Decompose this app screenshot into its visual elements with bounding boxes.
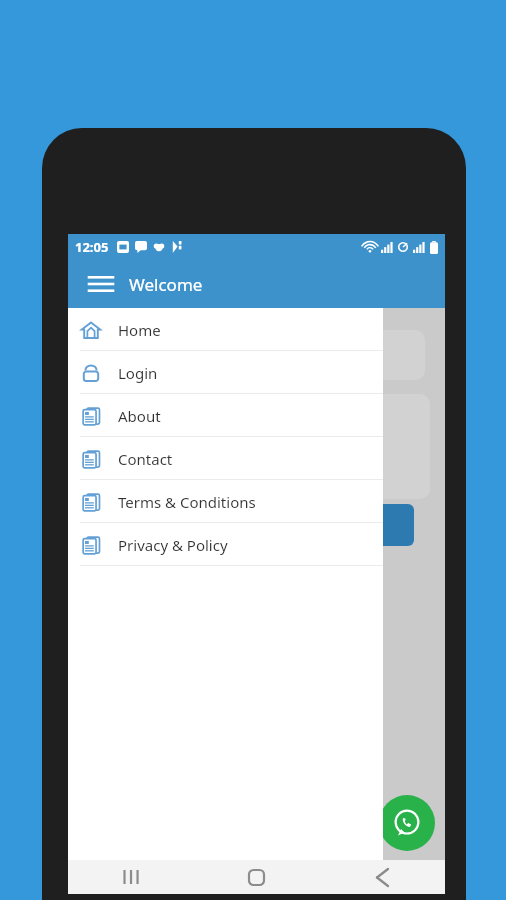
button[interactable]: Privacy & Policy [68, 523, 383, 566]
staticText: About [118, 406, 161, 426]
button[interactable]: Login [68, 351, 383, 394]
button[interactable]: Home [68, 308, 383, 351]
staticText: Contact [118, 449, 173, 469]
button[interactable]: Contact [68, 437, 383, 480]
button[interactable]: Home [193, 860, 319, 894]
staticText: 12:05 [75, 238, 109, 256]
staticText: Login [118, 363, 158, 383]
button[interactable]: Open navigation menu [79, 260, 123, 308]
button[interactable]: WhatsApp [379, 795, 435, 851]
staticText: Welcome [129, 273, 203, 296]
button[interactable]: Terms & Conditions [68, 480, 383, 523]
button[interactable]: Recent apps [68, 860, 193, 894]
staticText: Terms & Conditions [118, 492, 256, 512]
button[interactable]: About [68, 394, 383, 437]
staticText: Home [118, 320, 161, 340]
button[interactable]: Back [319, 860, 445, 894]
staticText: Privacy & Policy [118, 535, 228, 555]
